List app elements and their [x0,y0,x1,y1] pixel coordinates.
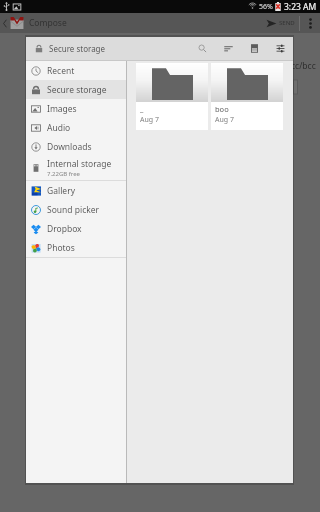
staticText: SEND [279,19,295,27]
button[interactable]: Navigate up [0,13,10,33]
staticText: Audio [47,122,71,134]
staticText: Secure storage [49,43,106,54]
staticText: Gallery [47,185,75,197]
staticText: Photos [47,242,75,254]
button[interactable]: Sort [215,37,241,60]
staticText: Aug 7 [140,115,159,125]
button[interactable]: Internal storage [26,156,126,180]
staticText: Secure storage [47,84,107,96]
staticText: Recent [47,65,75,77]
staticText: Internal storage [47,158,112,170]
staticText: Dropbox [47,223,82,235]
button[interactable]: Grid view [241,37,267,60]
button[interactable]: View settings [267,37,293,60]
staticText: boo [215,104,229,114]
button[interactable]: Audio [26,118,126,137]
staticText: 56% [259,2,273,12]
button[interactable]: Search [189,37,215,60]
button[interactable]: Photos [26,238,126,257]
button[interactable]: More options [300,13,320,33]
button[interactable]: Dropbox [26,219,126,238]
staticText: Sound picker [47,204,100,216]
button[interactable]: boo [211,63,283,130]
staticText: Aug 7 [215,115,234,125]
staticText: 7.22GB free [47,170,80,178]
button[interactable]: Recent [26,61,126,80]
staticText: _ [140,104,144,114]
staticText: Images [47,103,77,115]
staticText: Downloads [47,141,92,153]
button[interactable]: SEND [263,13,298,33]
staticText: 3:23 AM [284,1,317,13]
button[interactable]: Images [26,99,126,118]
button[interactable]: Sound picker [26,200,126,219]
button[interactable]: Downloads [26,137,126,156]
button[interactable]: Gallery [26,181,126,200]
staticText: Compose [29,17,67,29]
button[interactable]: Secure storage [26,80,126,99]
button[interactable]: _ [136,63,208,130]
staticText: cc/bcc [291,60,316,72]
